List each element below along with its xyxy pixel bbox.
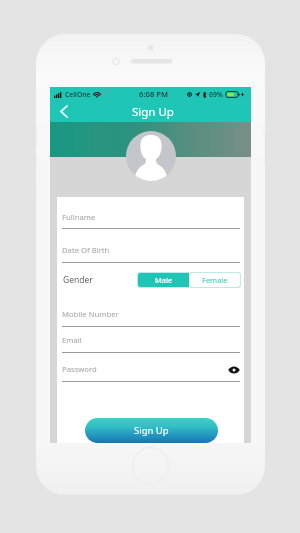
staticText: Password xyxy=(62,364,97,374)
button[interactable]: Back xyxy=(50,101,78,122)
staticText: Email xyxy=(62,335,82,345)
staticText: Mobile Number xyxy=(62,309,119,319)
button[interactable]: Female xyxy=(189,273,240,287)
staticText: 6:08 PM xyxy=(139,89,169,99)
button[interactable]: Mobile Number xyxy=(62,307,240,327)
staticText: Female xyxy=(202,275,228,285)
button[interactable]: Show password xyxy=(228,364,240,376)
button[interactable]: Date Of Birth xyxy=(62,243,240,263)
staticText: 69% xyxy=(209,90,223,99)
staticText: Sign Up xyxy=(134,424,169,437)
staticText: Fullname xyxy=(62,212,96,222)
button[interactable]: Email xyxy=(62,333,240,353)
button[interactable]: Fullname xyxy=(62,210,240,229)
button[interactable]: Password xyxy=(62,362,240,382)
staticText: Gender xyxy=(63,274,93,286)
staticText: Date Of Birth xyxy=(62,245,110,255)
staticText: Male xyxy=(155,275,173,285)
staticText: Sign Up xyxy=(132,104,174,120)
button[interactable]: Sign Up xyxy=(85,418,218,443)
button[interactable]: Male xyxy=(138,273,189,287)
staticText: CellOne xyxy=(65,90,91,99)
